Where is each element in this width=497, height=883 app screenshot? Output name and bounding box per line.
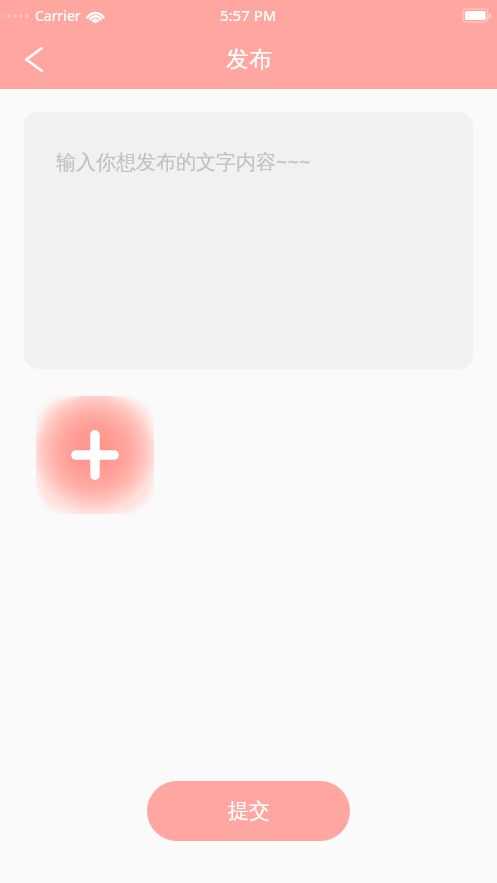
button[interactable]: 提交 <box>147 781 350 841</box>
staticText: Carrier <box>35 6 81 25</box>
staticText: 发布 <box>226 45 272 74</box>
button[interactable]: Add photo <box>36 396 154 514</box>
staticText: 5:57 PM <box>220 5 277 25</box>
staticText: 提交 <box>228 798 270 824</box>
button[interactable]: 输入你想发布的文字内容~~~ <box>24 112 473 369</box>
staticText: 输入你想发布的文字内容~~~ <box>56 148 311 175</box>
button[interactable]: Back <box>0 30 68 89</box>
